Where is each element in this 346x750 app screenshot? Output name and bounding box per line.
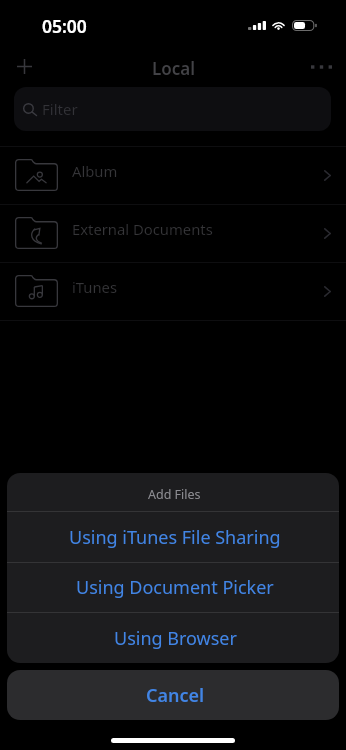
staticText: External Documents: [72, 219, 213, 239]
staticText: 05:00: [42, 14, 87, 38]
button[interactable]: More options: [300, 46, 342, 87]
button[interactable]: Album: [0, 146, 346, 204]
button[interactable]: Filter: [14, 87, 331, 131]
button[interactable]: Using Browser: [7, 613, 339, 663]
button[interactable]: Cancel: [7, 670, 339, 720]
button[interactable]: Using iTunes File Sharing: [7, 512, 339, 562]
staticText: Album: [72, 161, 118, 181]
staticText: Local: [152, 57, 196, 80]
staticText: Cancel: [146, 683, 205, 708]
button[interactable]: Using Document Picker: [7, 563, 339, 612]
staticText: Using Document Picker: [76, 575, 274, 600]
staticText: Filter: [42, 99, 78, 119]
staticText: Add Files: [148, 486, 201, 503]
staticText: Using Browser: [114, 626, 237, 651]
button[interactable]: External Documents: [0, 204, 346, 262]
button[interactable]: iTunes: [0, 262, 346, 320]
button[interactable]: Add: [3, 46, 45, 87]
staticText: iTunes: [72, 277, 118, 297]
staticText: Using iTunes File Sharing: [69, 525, 281, 550]
